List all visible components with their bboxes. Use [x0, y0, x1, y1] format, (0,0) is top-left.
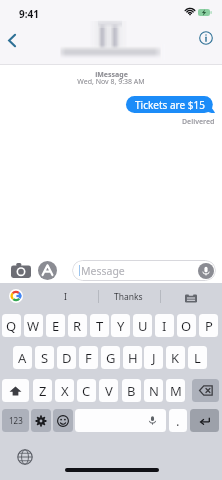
button[interactable]: Settings — [31, 409, 51, 432]
staticText: 123 — [9, 415, 23, 426]
staticText: I — [162, 317, 167, 335]
button[interactable]: Details — [197, 29, 215, 47]
button[interactable]: S — [35, 346, 54, 369]
staticText: K — [171, 349, 180, 367]
button[interactable]: Back — [1, 28, 22, 52]
button[interactable]: Enter — [190, 409, 219, 432]
staticText: M — [170, 382, 182, 400]
button[interactable]: H — [123, 346, 142, 369]
staticText: F — [85, 349, 92, 367]
staticText: J — [152, 349, 156, 367]
staticText: T — [96, 317, 104, 335]
button[interactable]: Z — [33, 379, 52, 402]
staticText: I — [64, 291, 67, 303]
button[interactable]: I — [155, 314, 174, 337]
staticText: U — [138, 317, 148, 335]
button[interactable]: Thanks — [99, 286, 157, 308]
button[interactable]: J — [144, 346, 163, 369]
button[interactable]: Apps — [37, 260, 57, 280]
staticText: L — [194, 349, 201, 367]
staticText: R — [73, 317, 82, 335]
button[interactable]: M — [166, 379, 185, 402]
staticText: S — [41, 349, 49, 367]
button[interactable]: G — [101, 346, 120, 369]
button[interactable]: Message — [72, 260, 216, 281]
button[interactable]: X — [55, 379, 74, 402]
staticText: Message — [81, 264, 125, 278]
button[interactable]: Change keyboard — [17, 449, 33, 465]
button[interactable]: O — [177, 314, 196, 337]
staticText: Z — [39, 382, 47, 400]
button[interactable]: D — [57, 346, 76, 369]
button[interactable]: N — [144, 379, 163, 402]
button[interactable]: K — [166, 346, 185, 369]
button[interactable]: Tickets are $15 — [126, 96, 213, 113]
staticText: D — [62, 349, 72, 367]
button[interactable]: A — [13, 346, 32, 369]
button[interactable]: Backspace — [192, 379, 219, 402]
staticText: Y — [117, 317, 125, 335]
staticText: . — [176, 412, 180, 430]
button[interactable]: I — [36, 286, 94, 308]
staticText: B — [127, 382, 136, 400]
staticText: N — [149, 382, 159, 400]
staticText: E — [52, 317, 60, 335]
staticText: G — [106, 349, 116, 367]
staticText: H — [128, 349, 138, 367]
staticText: P — [205, 317, 213, 335]
button[interactable]: W — [24, 314, 43, 337]
button[interactable]: L — [188, 346, 207, 369]
button[interactable]: E — [46, 314, 65, 337]
button[interactable]: P — [199, 314, 218, 337]
staticText: Tickets are $15 — [135, 98, 205, 112]
staticText: iMessage — [95, 70, 128, 80]
staticText: Q — [6, 317, 17, 335]
button[interactable]: Google — [9, 289, 23, 303]
button[interactable]: Camera — [10, 260, 32, 280]
button[interactable]: T — [90, 314, 109, 337]
button[interactable]: U — [133, 314, 152, 337]
staticText: A — [18, 349, 27, 367]
button[interactable]: Emoji — [53, 409, 73, 432]
button[interactable] — [75, 409, 166, 432]
staticText: 9:41 — [19, 7, 39, 21]
staticText: X — [61, 382, 69, 400]
button[interactable]: 123 — [2, 409, 29, 432]
button[interactable]: . — [169, 409, 187, 432]
button[interactable]: R — [68, 314, 87, 337]
button[interactable]: C — [77, 379, 96, 402]
staticText: Thanks — [114, 291, 143, 303]
button[interactable]: Q — [2, 314, 21, 337]
staticText: W — [27, 317, 40, 335]
button[interactable]: Clipboard — [185, 292, 197, 304]
button[interactable]: Y — [111, 314, 130, 337]
staticText: V — [105, 382, 113, 400]
staticText: Delivered — [182, 117, 215, 127]
button[interactable]: V — [99, 379, 118, 402]
staticText: C — [82, 382, 91, 400]
staticText: O — [181, 317, 192, 335]
staticText: Wed, Nov 8, 9:38 AM — [77, 77, 145, 87]
button[interactable]: Shift — [2, 379, 29, 402]
button[interactable]: B — [122, 379, 141, 402]
button[interactable]: F — [79, 346, 98, 369]
